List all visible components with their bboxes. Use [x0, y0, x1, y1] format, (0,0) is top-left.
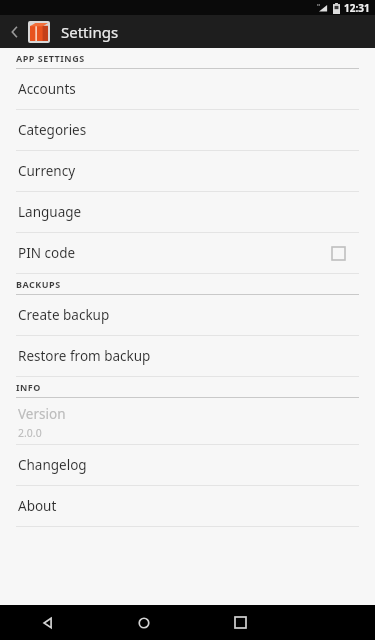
button[interactable]: Create backup: [0, 295, 375, 336]
button[interactable]: Recent apps: [192, 605, 288, 640]
button[interactable]: Restore from backup: [0, 336, 375, 377]
button[interactable]: Accounts: [0, 69, 375, 110]
staticText: APP SETTINGS: [16, 52, 85, 64]
button[interactable]: About: [0, 486, 375, 527]
staticText: PIN code: [18, 244, 76, 262]
staticText: Categories: [18, 121, 87, 139]
button[interactable]: Home: [96, 605, 192, 640]
button[interactable]: Changelog: [0, 445, 375, 486]
button[interactable]: Language: [0, 192, 375, 233]
button[interactable]: Currency: [0, 151, 375, 192]
staticText: Changelog: [18, 456, 87, 474]
button[interactable]: Categories: [0, 110, 375, 151]
staticText: Create backup: [18, 306, 110, 324]
staticText: BACKUPS: [16, 278, 61, 290]
button[interactable]: Back: [0, 15, 28, 48]
staticText: Settings: [61, 22, 119, 42]
staticText: Restore from backup: [18, 347, 151, 365]
staticText: About: [18, 497, 57, 515]
staticText: INFO: [16, 381, 41, 393]
button[interactable]: Back: [0, 605, 96, 640]
staticText: Version: [18, 405, 66, 423]
staticText: Language: [18, 203, 82, 221]
button[interactable]: PIN code: [0, 233, 375, 274]
staticText: Accounts: [18, 80, 76, 98]
staticText: 2.0.0: [18, 426, 42, 440]
button[interactable]: Version: [0, 398, 375, 445]
staticText: 12:31: [344, 1, 370, 15]
staticText: Currency: [18, 162, 76, 180]
